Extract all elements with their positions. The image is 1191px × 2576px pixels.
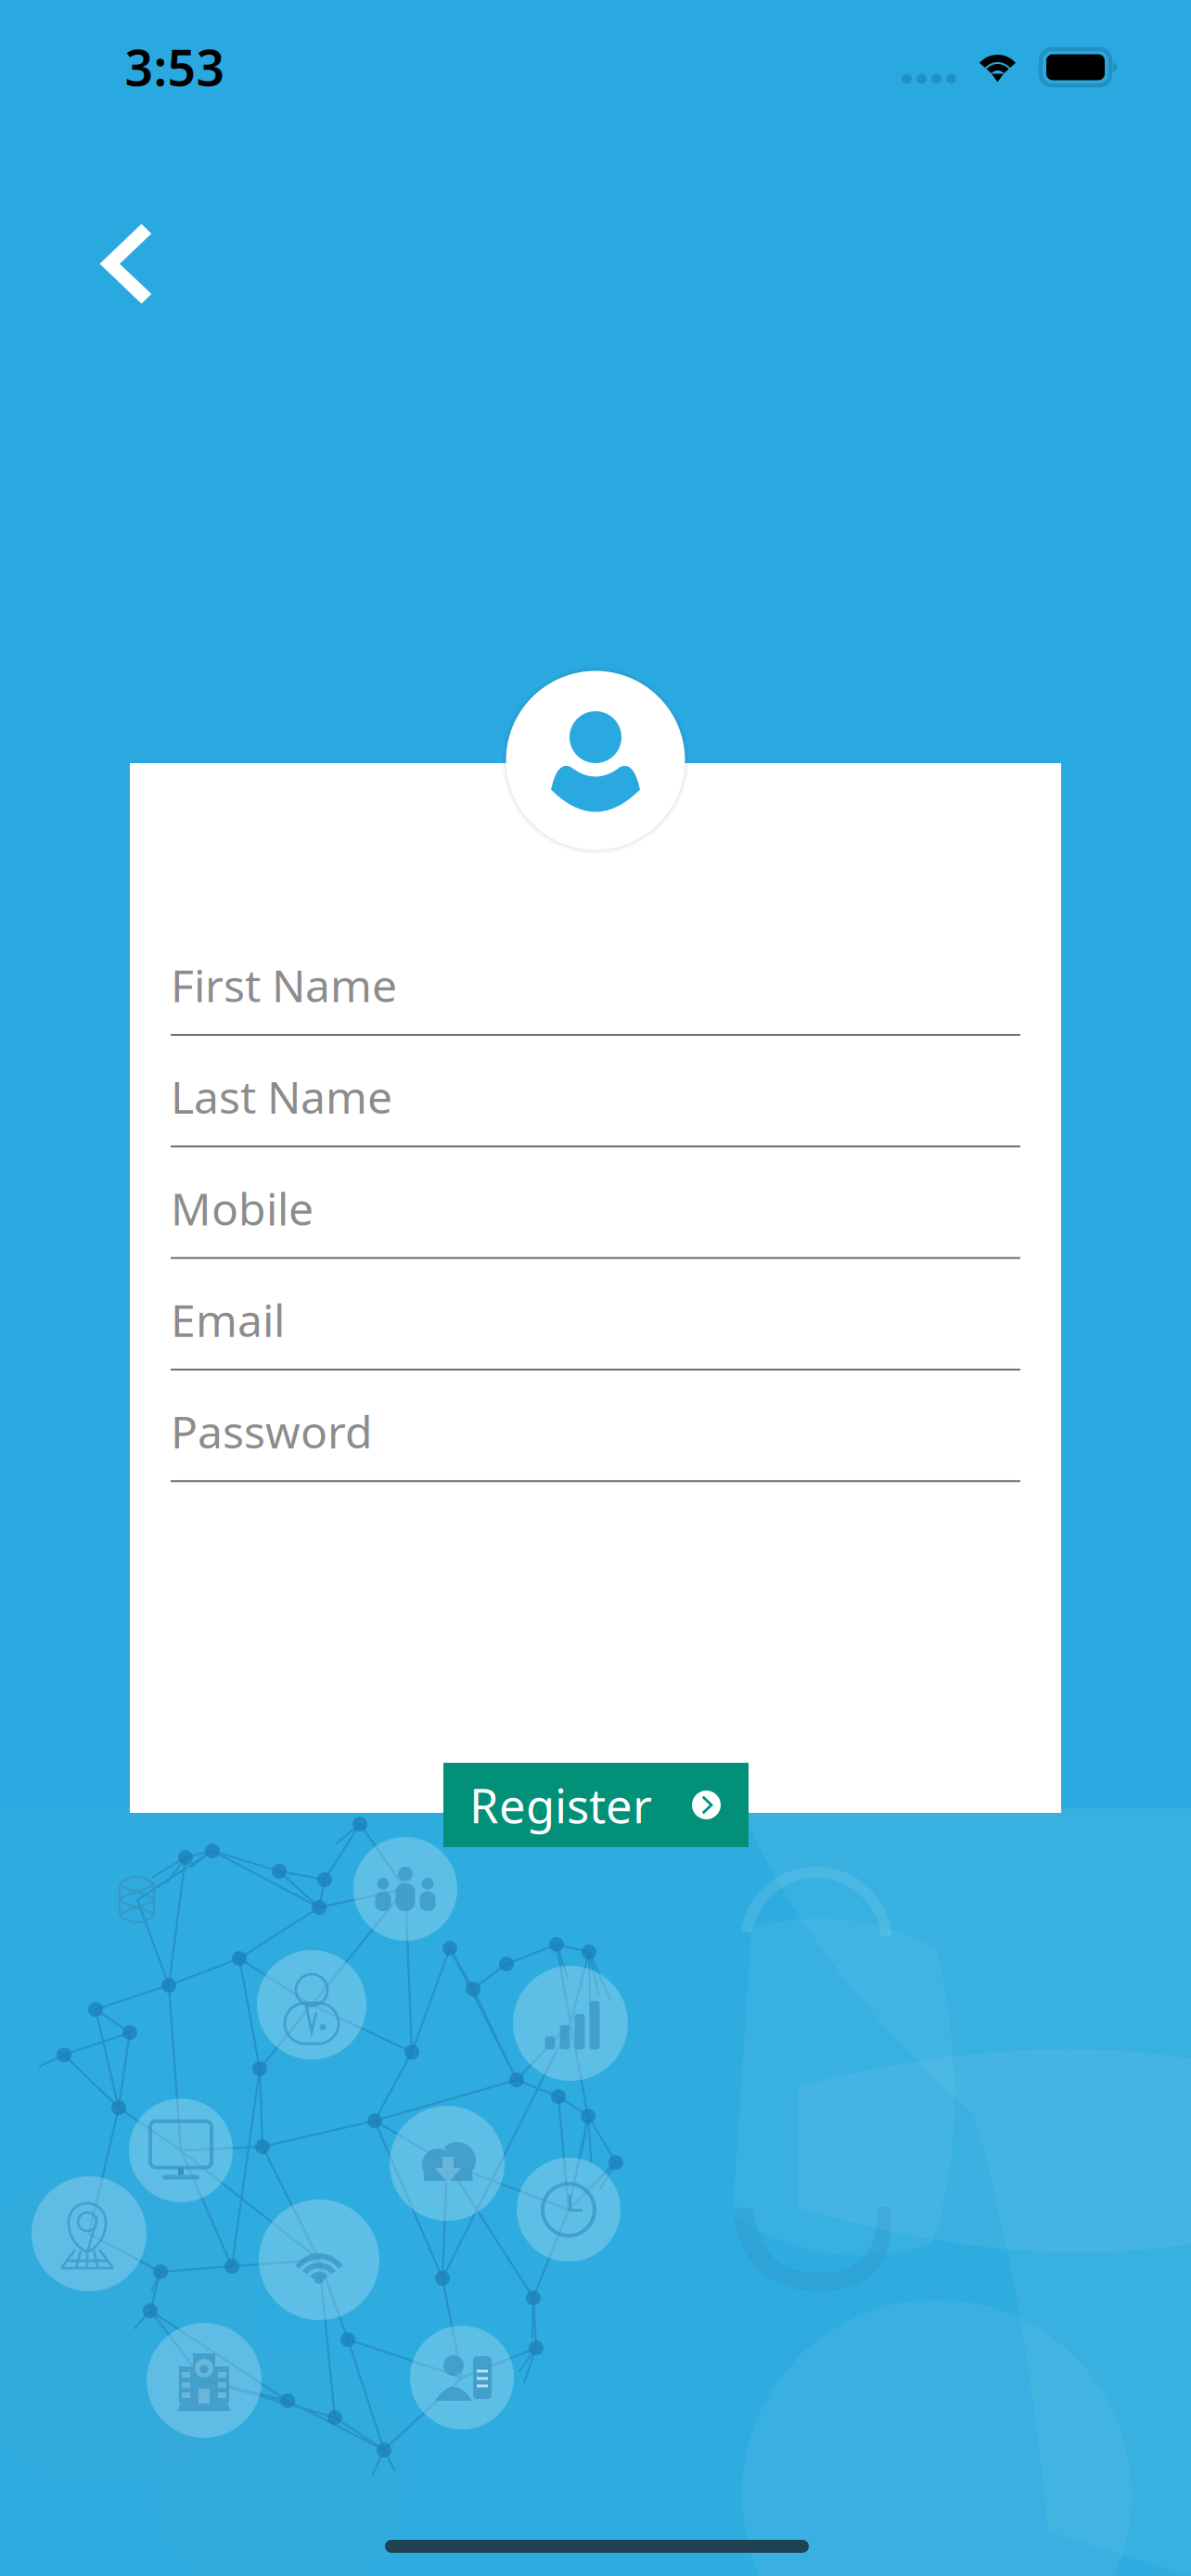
- button[interactable]: Back: [61, 195, 191, 334]
- button[interactable]: Last Name: [171, 1036, 1020, 1147]
- button[interactable]: Mobile: [171, 1147, 1020, 1259]
- staticText: Mobile: [171, 1178, 314, 1238]
- staticText: Email: [171, 1290, 285, 1349]
- button[interactable]: Register: [443, 1763, 749, 1847]
- staticText: Register: [469, 1774, 652, 1836]
- staticText: Password: [171, 1402, 373, 1461]
- button[interactable]: Password: [171, 1371, 1020, 1482]
- staticText: 3:53: [125, 34, 225, 100]
- staticText: Last Name: [171, 1067, 392, 1126]
- button[interactable]: Email: [171, 1259, 1020, 1371]
- staticText: First Name: [171, 955, 397, 1014]
- button[interactable]: First Name: [171, 924, 1020, 1036]
